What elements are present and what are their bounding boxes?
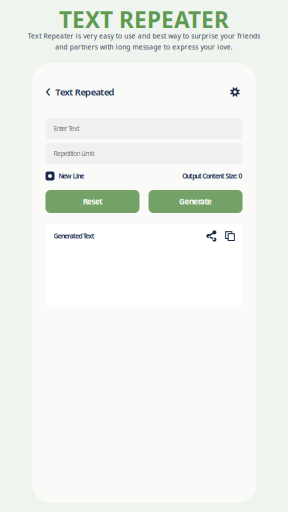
staticText: Generate	[179, 196, 212, 207]
staticText: Enter Text	[53, 124, 79, 133]
button[interactable]: Copy	[216, 231, 234, 240]
staticText: Reset	[83, 196, 102, 207]
button[interactable]: Share	[206, 231, 216, 241]
staticText: Repetition Limit	[53, 149, 94, 158]
button[interactable]: Settings	[223, 79, 256, 105]
staticText: Text Repeated	[55, 86, 115, 98]
staticText: New Line	[58, 172, 85, 180]
staticText: Output Content Size: 0	[182, 172, 242, 180]
staticText: Generated Text	[53, 232, 95, 240]
staticText: TEXT REPEATER	[59, 4, 229, 34]
button[interactable]: Text Repeated	[32, 79, 132, 105]
button[interactable]: Generate	[148, 190, 242, 213]
staticText: Text Repeater is very easy to use and be…	[28, 32, 260, 40]
staticText: and partners with long message to expres…	[55, 43, 233, 51]
button[interactable]: Reset	[45, 190, 139, 213]
button[interactable]: New Line	[45, 169, 85, 183]
